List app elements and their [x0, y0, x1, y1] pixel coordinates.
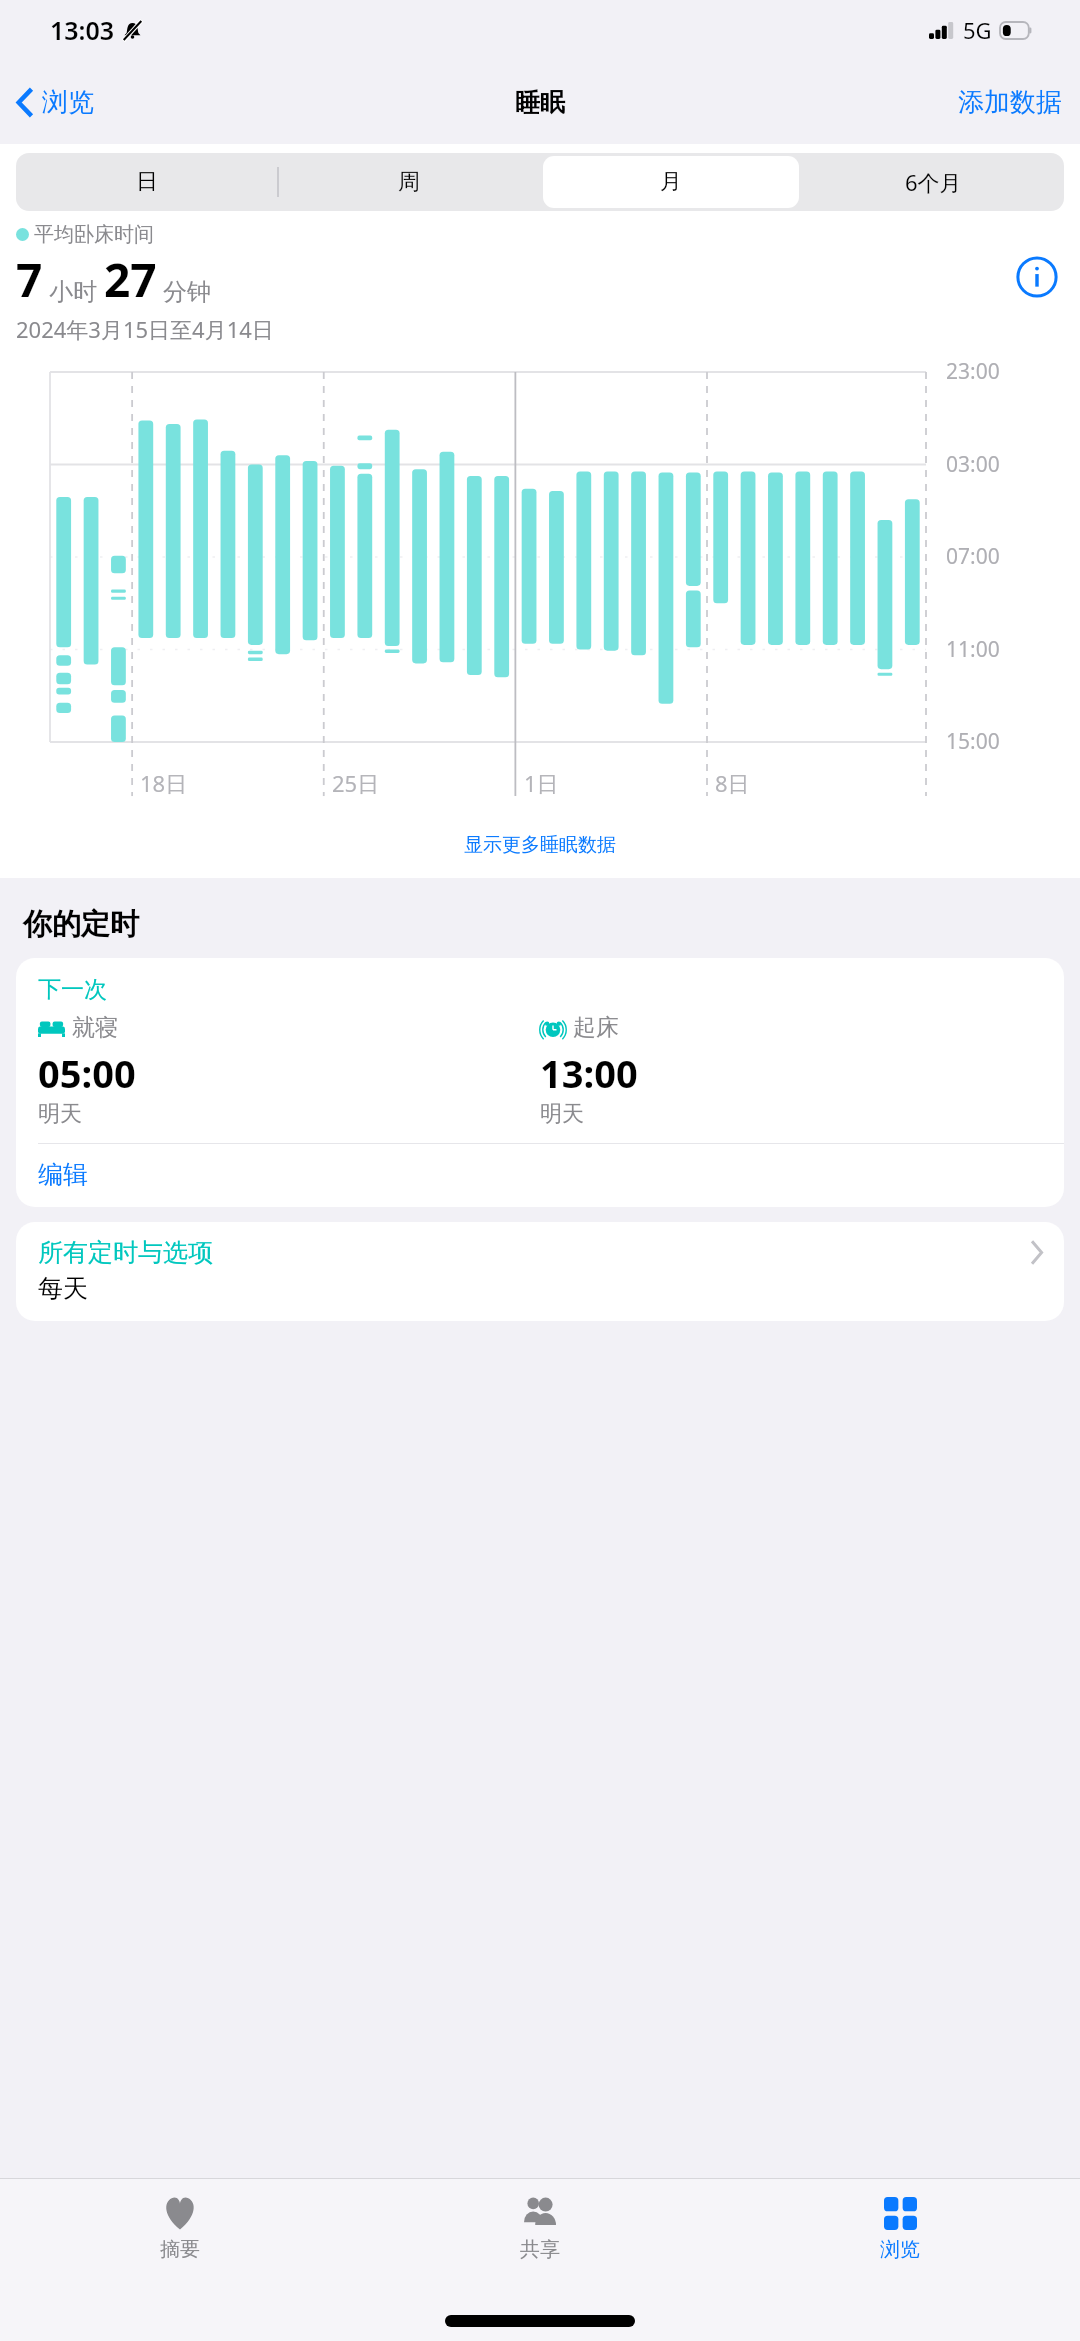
staticText: 明天	[540, 1100, 584, 1128]
staticText: 所有定时与选项	[38, 1237, 1029, 1268]
button[interactable]: 所有定时与选项	[16, 1222, 1064, 1321]
staticText: 07:00	[946, 542, 1000, 571]
button[interactable]: 显示更多睡眠数据	[0, 820, 1080, 870]
staticText: 25日	[332, 768, 380, 798]
button[interactable]: 编辑	[16, 1144, 1064, 1207]
button[interactable]: 信息	[1010, 250, 1064, 304]
staticText: 浏览	[880, 2237, 920, 2262]
staticText: 浏览	[42, 86, 94, 119]
staticText: 编辑	[38, 1159, 88, 1190]
staticText: 显示更多睡眠数据	[464, 833, 616, 857]
staticText: 月	[660, 168, 682, 196]
staticText: 你的定时	[23, 906, 139, 943]
staticText: 7	[16, 248, 43, 311]
staticText: 15:00	[946, 727, 1000, 756]
staticText: 摘要	[160, 2237, 200, 2262]
staticText: 添加数据	[958, 86, 1062, 119]
staticText: 8日	[715, 768, 750, 798]
button[interactable]: 添加数据	[946, 76, 1080, 129]
staticText: 11:00	[946, 635, 1000, 664]
staticText: 13:00	[540, 1047, 638, 1099]
button[interactable]: 共享	[360, 2179, 720, 2291]
staticText: 睡眠	[515, 87, 565, 118]
staticText: 共享	[520, 2237, 560, 2262]
button[interactable]: 月	[543, 156, 799, 208]
staticText: 18日	[140, 768, 188, 798]
staticText: 03:00	[946, 450, 1000, 479]
button[interactable]: 浏览	[0, 76, 106, 129]
staticText: 2024年3月15日至4月14日	[16, 314, 274, 344]
staticText: 6个月	[905, 167, 962, 197]
staticText: 就寝	[72, 1013, 118, 1042]
button[interactable]: 周	[281, 156, 537, 208]
button[interactable]: 摘要	[0, 2179, 360, 2291]
staticText: 每天	[38, 1273, 88, 1304]
button[interactable]: 6个月	[805, 156, 1061, 208]
staticText: 小时	[49, 277, 97, 307]
staticText: 日	[136, 168, 158, 196]
staticText: 27	[104, 248, 157, 311]
button[interactable]: 浏览	[720, 2179, 1080, 2291]
staticText: 起床	[573, 1013, 619, 1042]
staticText: 05:00	[38, 1047, 136, 1099]
staticText: 周	[398, 168, 420, 196]
staticText: 下一次	[38, 975, 107, 1004]
staticText: 5G	[963, 15, 992, 45]
button[interactable]: 日	[19, 156, 275, 208]
staticText: 明天	[38, 1100, 82, 1128]
staticText: 13:03	[50, 13, 115, 47]
staticText: 分钟	[163, 277, 211, 307]
staticText: 平均卧床时间	[34, 222, 154, 247]
staticText: 1日	[524, 768, 559, 798]
staticText: 23:00	[946, 357, 1000, 386]
